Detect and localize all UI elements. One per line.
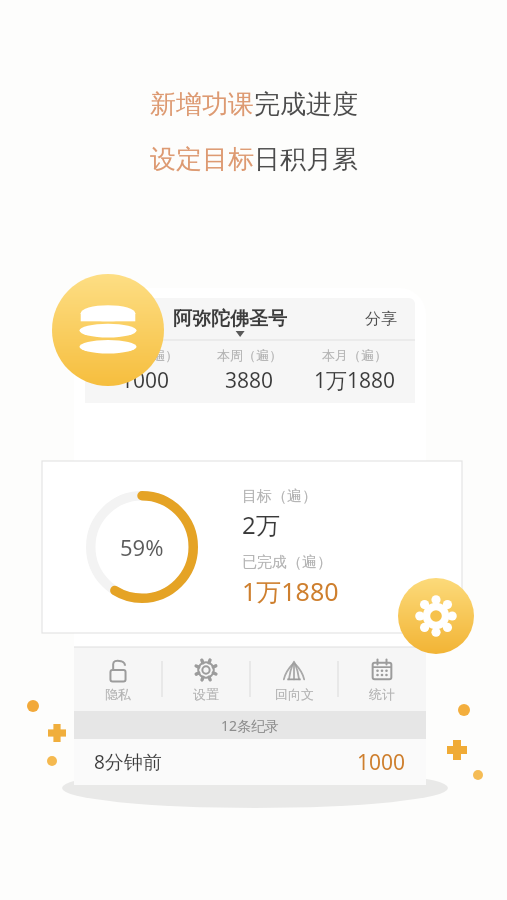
button[interactable]: 设置 <box>162 647 250 711</box>
staticText: 本周（遍） <box>217 347 282 363</box>
staticText: 设置 <box>193 686 219 702</box>
staticText: 今日（遍） <box>113 347 178 363</box>
button[interactable]: 今日（遍） <box>93 347 197 395</box>
staticText: 59% <box>120 532 164 562</box>
button[interactable]: 分享 <box>361 305 401 333</box>
staticText: 本月（遍） <box>322 347 387 363</box>
staticText: 统计 <box>369 686 395 702</box>
staticText: 3880 <box>225 366 274 395</box>
staticText: 1万1880 <box>242 574 339 608</box>
staticText: 设定目标日积月累 <box>150 143 358 176</box>
button[interactable]: Counter <box>52 274 164 386</box>
button[interactable]: 8分钟前 <box>74 739 426 785</box>
staticText: 1000 <box>121 366 170 395</box>
staticText: 1000 <box>357 748 406 777</box>
button[interactable]: 本月（遍） <box>302 347 407 395</box>
staticText: 目标（遍） <box>242 487 317 506</box>
staticText: 隐私 <box>105 686 131 702</box>
button[interactable]: Settings <box>398 578 474 654</box>
staticText: 阿弥陀佛圣号 <box>173 307 287 331</box>
staticText: 已完成（遍） <box>242 553 332 572</box>
staticText: 2万 <box>242 508 280 541</box>
button[interactable]: 隐私 <box>74 647 162 711</box>
staticText: 回向文 <box>275 686 314 702</box>
button[interactable]: 回向文 <box>250 647 338 711</box>
staticText: 12条纪录 <box>221 716 280 735</box>
button[interactable]: 本周（遍） <box>197 347 302 395</box>
button[interactable]: 统计 <box>338 647 426 711</box>
staticText: 8分钟前 <box>94 749 162 775</box>
staticText: 1万1880 <box>314 366 396 395</box>
staticText: 新增功课完成进度 <box>150 88 358 121</box>
